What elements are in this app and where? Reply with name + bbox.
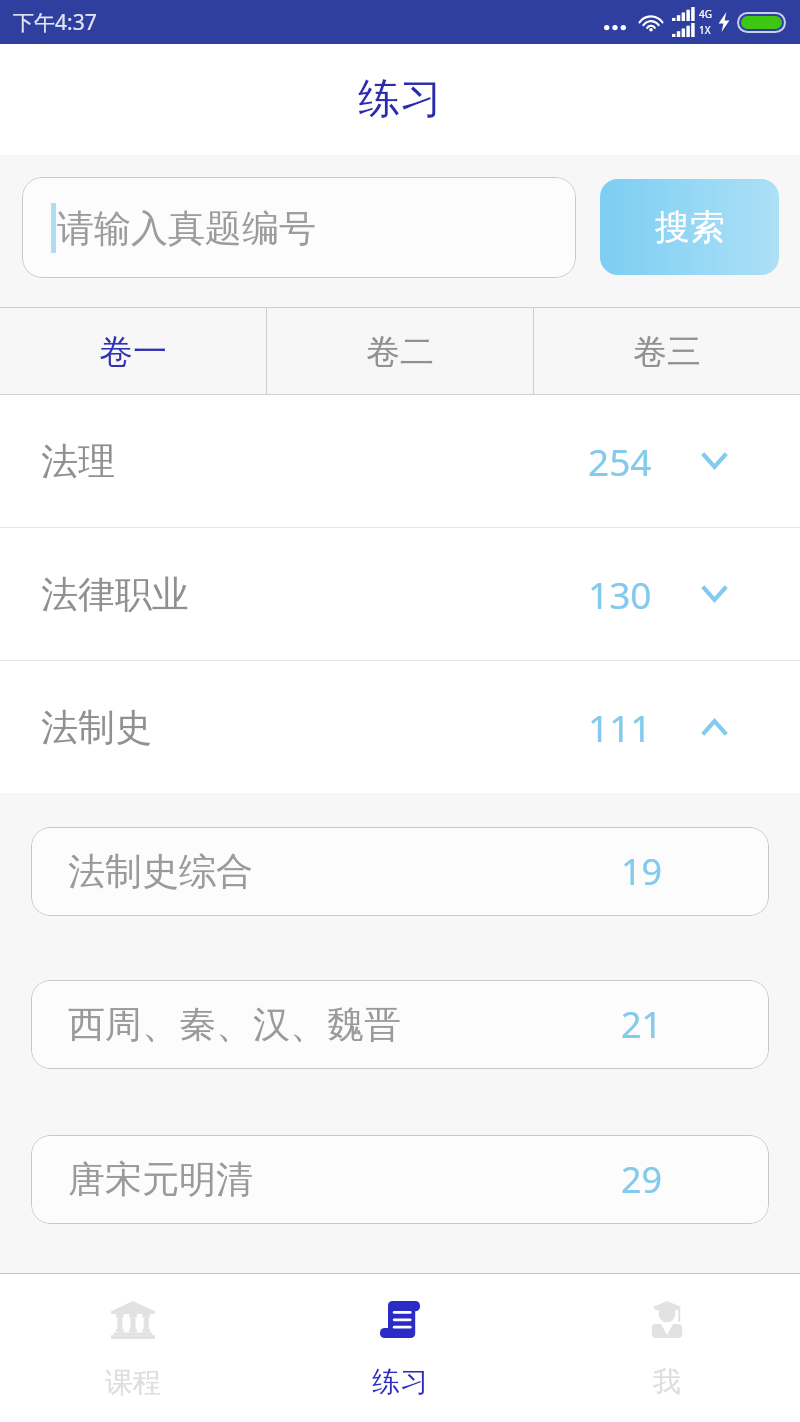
- staticText: 29: [621, 1155, 663, 1204]
- staticText: 搜索: [655, 205, 725, 249]
- button[interactable]: 卷三: [534, 308, 800, 394]
- other: 收起: [702, 719, 727, 735]
- button[interactable]: 我: [533, 1274, 800, 1422]
- staticText: 练习: [358, 73, 442, 126]
- staticText: 我: [653, 1364, 681, 1399]
- button[interactable]: 法制史: [0, 661, 800, 793]
- button[interactable]: 搜索: [600, 179, 779, 275]
- staticText: 卷三: [633, 330, 701, 373]
- staticText: 21: [621, 1000, 663, 1049]
- staticText: 法理: [41, 438, 115, 485]
- staticText: 下午4:37: [13, 8, 97, 37]
- button[interactable]: 卷二: [267, 308, 533, 394]
- button[interactable]: 法理: [0, 395, 800, 527]
- staticText: 请输入真题编号: [57, 205, 316, 252]
- staticText: 法律职业: [41, 571, 189, 618]
- button[interactable]: 法律职业: [0, 528, 800, 660]
- other: 练习: [380, 1301, 420, 1338]
- staticText: 4G: [699, 7, 712, 21]
- other: 展开: [702, 453, 727, 469]
- button[interactable]: 西周、秦、汉、魏晋: [31, 980, 769, 1069]
- staticText: 1X: [699, 23, 711, 37]
- button[interactable]: 课程: [0, 1274, 266, 1422]
- staticText: 法制史: [41, 704, 152, 751]
- button[interactable]: 卷一: [0, 308, 266, 394]
- staticText: 卷二: [366, 330, 434, 373]
- button[interactable]: 唐宋元明清: [31, 1135, 769, 1224]
- button[interactable]: 法制史综合: [31, 827, 769, 916]
- other: 我: [647, 1301, 687, 1338]
- staticText: 唐宋元明清: [68, 1156, 253, 1203]
- staticText: 课程: [105, 1365, 161, 1400]
- staticText: 254: [588, 436, 652, 486]
- staticText: 卷一: [99, 330, 167, 373]
- staticText: 西周、秦、汉、魏晋: [68, 1001, 401, 1048]
- staticText: 111: [588, 702, 652, 752]
- staticText: 19: [621, 847, 663, 896]
- button[interactable]: 练习: [266, 1274, 533, 1422]
- other: 展开: [702, 586, 727, 602]
- other: 课程: [111, 1301, 155, 1339]
- button[interactable]: 请输入真题编号: [22, 177, 576, 278]
- staticText: 法制史综合: [68, 848, 253, 895]
- staticText: 练习: [372, 1364, 428, 1399]
- staticText: 130: [588, 569, 652, 619]
